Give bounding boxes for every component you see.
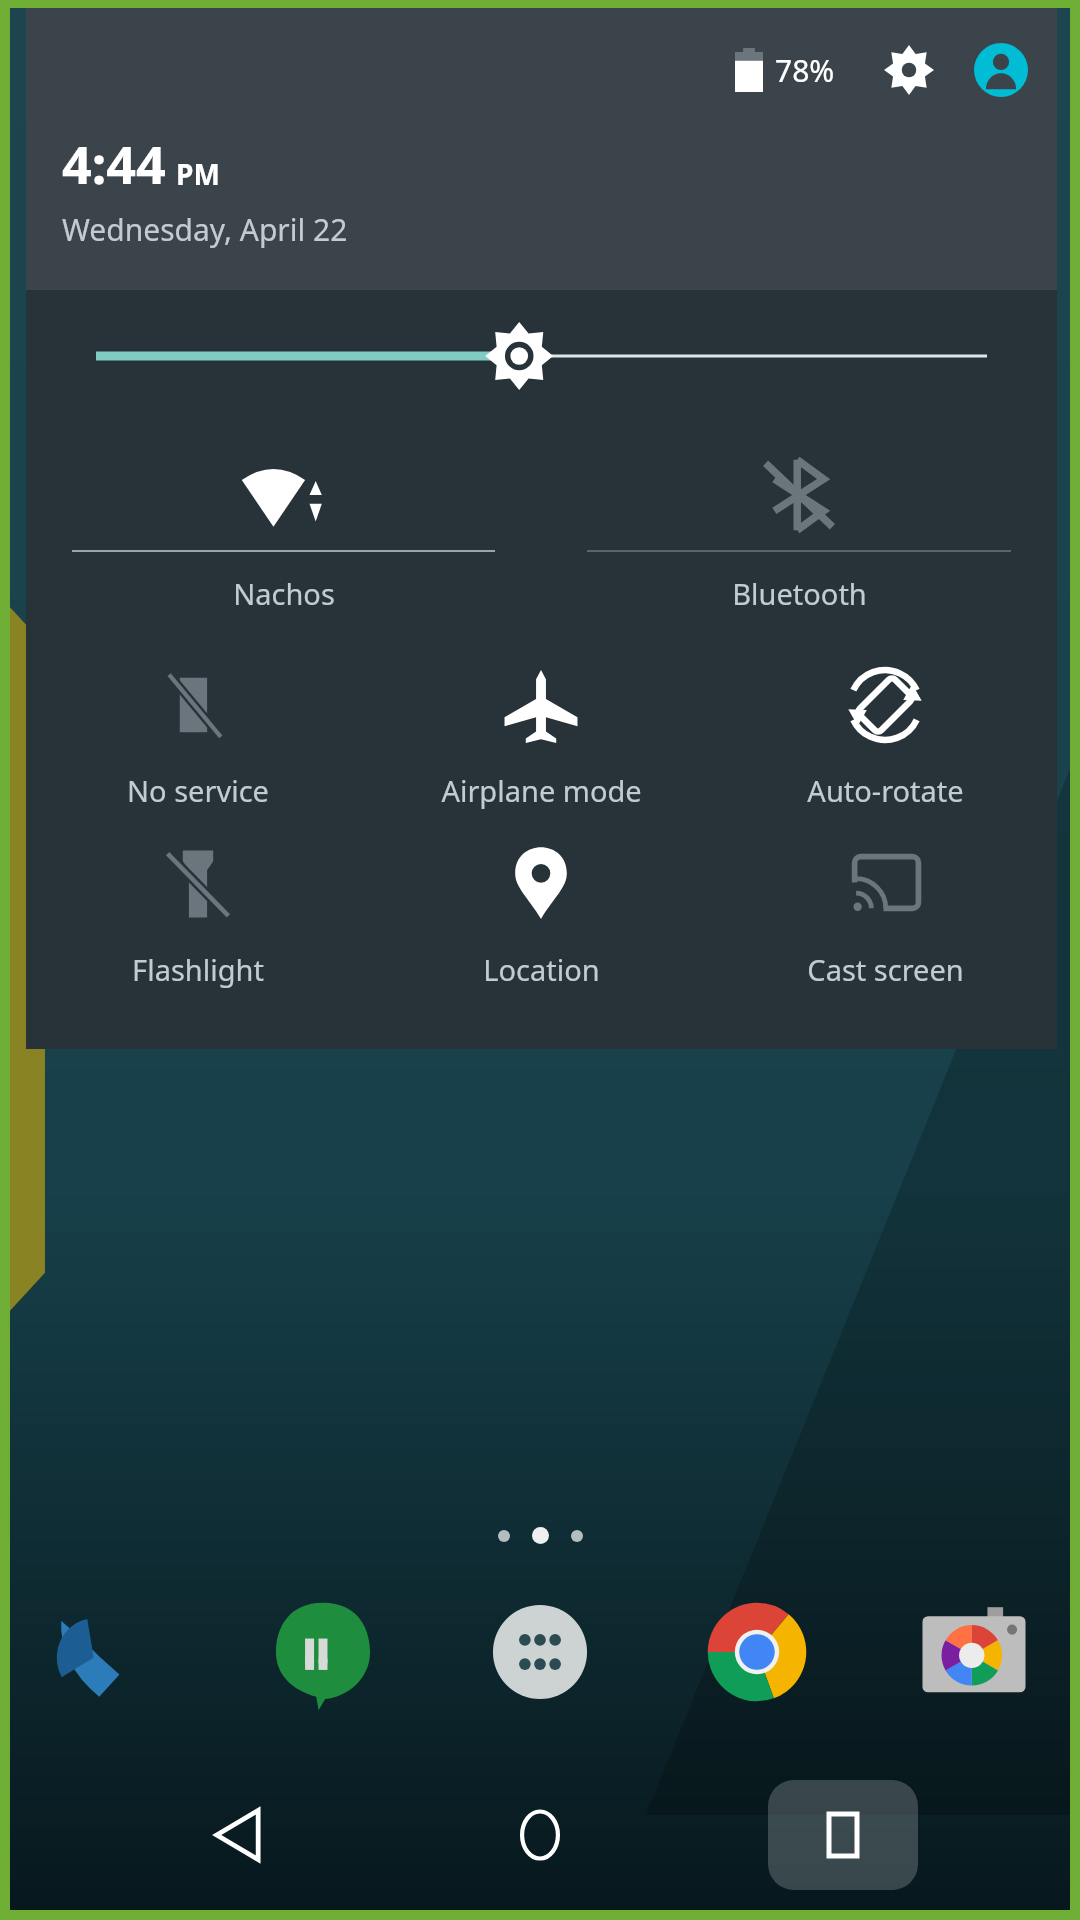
button[interactable]: Phone <box>44 1590 168 1714</box>
button[interactable]: Camera <box>912 1590 1036 1714</box>
button[interactable]: Airplane mode <box>369 653 713 810</box>
staticText: PM <box>176 155 220 193</box>
button[interactable]: Brightness <box>26 290 1057 422</box>
button[interactable]: Flashlight <box>26 832 369 989</box>
button[interactable]: User profile <box>973 42 1029 98</box>
staticText: Cast screen <box>807 950 964 989</box>
button[interactable]: Chrome <box>695 1590 819 1714</box>
button[interactable]: No service <box>26 653 369 810</box>
button[interactable]: Home <box>465 1780 615 1890</box>
button[interactable]: Cast screen <box>713 832 1057 989</box>
staticText: No service <box>127 771 269 810</box>
button[interactable]: All apps <box>478 1590 602 1714</box>
staticText: Auto-rotate <box>807 771 964 810</box>
button[interactable]: Bluetooth <box>541 440 1057 613</box>
button[interactable]: Auto-rotate <box>713 653 1057 810</box>
staticText: 4:44 <box>62 128 166 199</box>
staticText: Wednesday, April 22 <box>62 209 348 250</box>
staticText: 78% <box>775 50 835 91</box>
button[interactable]: Recent apps <box>768 1780 918 1890</box>
button[interactable]: Settings <box>881 42 937 98</box>
staticText: Location <box>483 950 600 989</box>
button[interactable]: Nachos <box>26 440 541 613</box>
button[interactable]: Back <box>163 1780 313 1890</box>
button[interactable]: Location <box>369 832 713 989</box>
button[interactable]: Hangouts <box>261 1590 385 1714</box>
staticText: Bluetooth <box>732 574 867 613</box>
staticText: Airplane mode <box>441 771 642 810</box>
staticText: Nachos <box>233 574 335 613</box>
staticText: Flashlight <box>132 950 264 989</box>
